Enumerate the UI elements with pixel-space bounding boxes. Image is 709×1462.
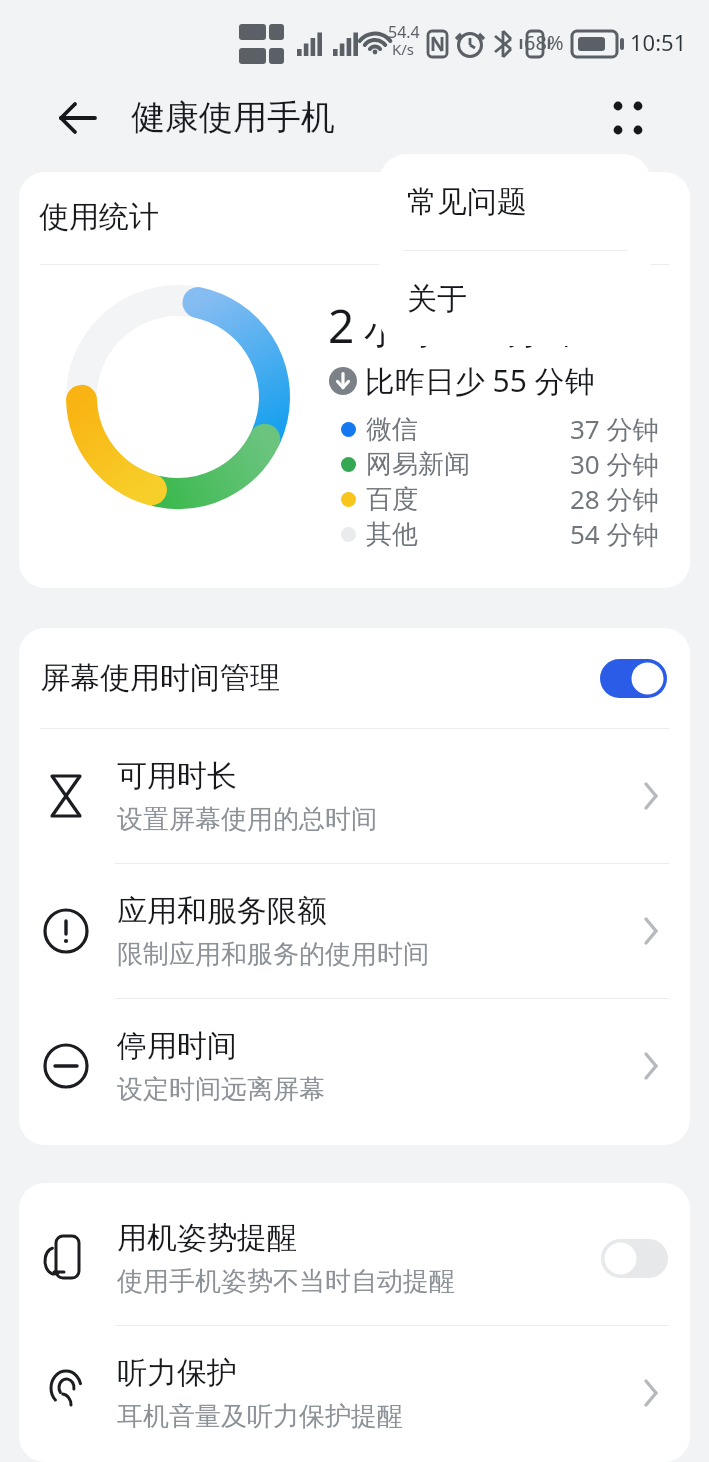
staticText: 百度 bbox=[366, 483, 418, 516]
staticText: 常见问题 bbox=[407, 183, 527, 221]
staticText: 54 分钟 bbox=[570, 516, 659, 552]
staticText: 小时 bbox=[355, 306, 444, 354]
button[interactable]: 应用和服务限额 bbox=[19, 864, 690, 998]
staticText: 屏幕使用时间管理 bbox=[40, 659, 280, 697]
staticText: 54.4 bbox=[388, 21, 420, 43]
staticText: 2 bbox=[328, 294, 355, 357]
staticText: 分钟 bbox=[497, 306, 577, 354]
staticText: 停用时间 bbox=[117, 1027, 237, 1065]
staticText: 健康使用手机 bbox=[131, 96, 335, 139]
staticText: 听力保护 bbox=[117, 1354, 237, 1392]
staticText: 28 分钟 bbox=[570, 481, 659, 517]
staticText: 微信 bbox=[366, 413, 418, 446]
staticText: 网易新闻 bbox=[366, 448, 470, 481]
staticText: 30 分钟 bbox=[570, 446, 659, 482]
button[interactable]: 听力保护 bbox=[19, 1326, 690, 1460]
staticText: 可用时长 bbox=[117, 757, 237, 795]
staticText: 关于 bbox=[407, 280, 467, 318]
button[interactable]: 常见问题 bbox=[379, 154, 651, 250]
staticText: K/s bbox=[392, 39, 415, 59]
button[interactable]: Screen time management on bbox=[600, 659, 667, 698]
button[interactable]: 用机姿势提醒 off bbox=[601, 1239, 668, 1278]
staticText: 31 bbox=[444, 294, 497, 357]
staticText: 使用手机姿势不当时自动提醒 bbox=[117, 1265, 455, 1298]
button[interactable]: 用机姿势提醒 bbox=[19, 1191, 690, 1325]
staticText: 使用统计 bbox=[39, 198, 159, 236]
staticText: 限制应用和服务的使用时间 bbox=[117, 938, 429, 971]
button[interactable]: 可用时长 bbox=[19, 729, 690, 863]
button[interactable]: 屏幕使用时间管理 bbox=[19, 628, 690, 728]
staticText: 应用和服务限额 bbox=[117, 892, 327, 930]
staticText: 37 分钟 bbox=[570, 411, 659, 447]
button[interactable]: Back bbox=[48, 88, 108, 148]
staticText: 68% bbox=[524, 29, 564, 56]
staticText: 耳机音量及听力保护提醒 bbox=[117, 1400, 403, 1433]
staticText: 其他 bbox=[366, 518, 418, 551]
button[interactable]: More options bbox=[598, 88, 658, 148]
staticText: 比昨日少 55 分钟 bbox=[357, 360, 595, 401]
staticText: 设定时间远离屏幕 bbox=[117, 1073, 325, 1106]
staticText: 设置屏幕使用的总时间 bbox=[117, 803, 377, 836]
button[interactable]: 停用时间 bbox=[19, 999, 690, 1133]
staticText: 用机姿势提醒 bbox=[117, 1219, 297, 1257]
button[interactable]: 关于 bbox=[379, 251, 651, 346]
staticText: 10:51 bbox=[630, 27, 687, 57]
